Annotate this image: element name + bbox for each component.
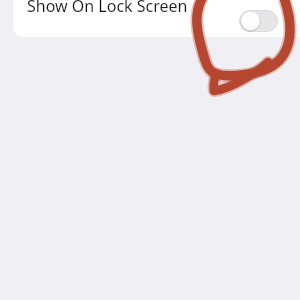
staticText: Show On Lock Screen	[27, 0, 188, 17]
button[interactable]: Show On Lock Screen toggle, off	[239, 10, 278, 32]
button[interactable]: Show On Lock Screen	[13, 0, 300, 37]
